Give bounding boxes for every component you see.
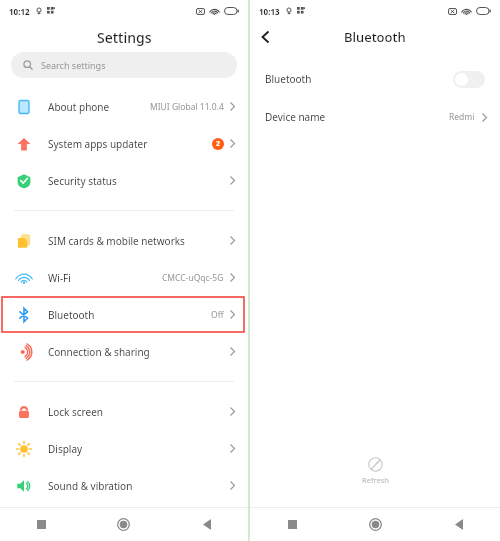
staticText: Display — [48, 442, 83, 456]
button[interactable]: Display — [0, 430, 248, 467]
button[interactable]: Search settings — [11, 52, 237, 78]
button[interactable]: Bluetooth — [250, 64, 500, 94]
button[interactable]: Connection & sharing — [0, 333, 248, 370]
staticText: 10:12 — [9, 6, 30, 17]
staticText: Sound & vibration — [48, 479, 133, 493]
staticText: About phone — [48, 100, 110, 114]
button[interactable]: Home — [334, 508, 417, 541]
button[interactable]: Back — [165, 508, 248, 541]
staticText: Search settings — [41, 59, 106, 71]
staticText: 2 — [216, 139, 221, 149]
staticText: Security status — [48, 174, 117, 188]
staticText: Connection & sharing — [48, 345, 150, 359]
staticText: Settings — [97, 28, 152, 47]
staticText: CMCC-uQqc-5G — [162, 272, 224, 284]
button[interactable]: Device name — [250, 102, 500, 132]
button[interactable]: Recents — [250, 508, 334, 541]
staticText: Wi-Fi — [48, 271, 71, 285]
button[interactable]: Home — [82, 508, 165, 541]
button[interactable]: About phone — [0, 88, 248, 125]
button[interactable]: Security status — [0, 162, 248, 199]
button[interactable]: Lock screen — [0, 393, 248, 430]
staticText: Bluetooth — [265, 72, 312, 86]
staticText: MIUI Global 11.0.4 — [150, 101, 224, 113]
button[interactable]: System apps updater — [0, 125, 248, 162]
staticText: Refresh — [362, 475, 389, 485]
staticText: Lock screen — [48, 405, 104, 419]
staticText: 10:13 — [259, 6, 280, 17]
button[interactable]: Wi-Fi — [0, 259, 248, 296]
button[interactable]: Sound & vibration — [0, 467, 248, 504]
staticText: SIM cards & mobile networks — [48, 234, 185, 248]
staticText: Redmi — [449, 111, 475, 123]
button[interactable]: Back — [250, 22, 280, 52]
button[interactable]: Bluetooth — [0, 296, 248, 333]
staticText: Bluetooth — [48, 308, 95, 322]
button[interactable]: Recents — [0, 508, 82, 541]
button[interactable]: Refresh — [250, 457, 500, 485]
staticText: Off — [211, 309, 224, 321]
staticText: System apps updater — [48, 137, 148, 151]
staticText: Bluetooth — [344, 28, 406, 46]
staticText: Device name — [265, 110, 326, 124]
button[interactable]: Back — [417, 508, 500, 541]
button[interactable]: SIM cards & mobile networks — [0, 222, 248, 259]
